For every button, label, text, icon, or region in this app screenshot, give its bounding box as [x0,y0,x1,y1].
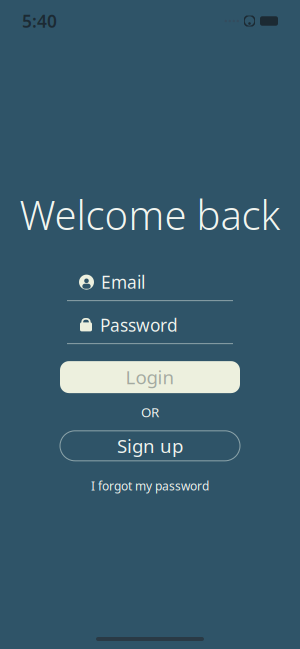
staticText: OR [141,403,159,421]
staticText: Sign up [117,433,183,458]
staticText: Password [100,314,178,337]
staticText: 5:40 [22,9,57,32]
staticText: Email [101,271,145,294]
button[interactable]: Sign up [60,431,240,461]
staticText: Login [125,365,174,389]
button[interactable]: Login [60,361,240,393]
button[interactable]: I forgot my password [91,478,209,494]
staticText: Welcome back [19,188,280,241]
staticText: I forgot my password [91,478,209,494]
